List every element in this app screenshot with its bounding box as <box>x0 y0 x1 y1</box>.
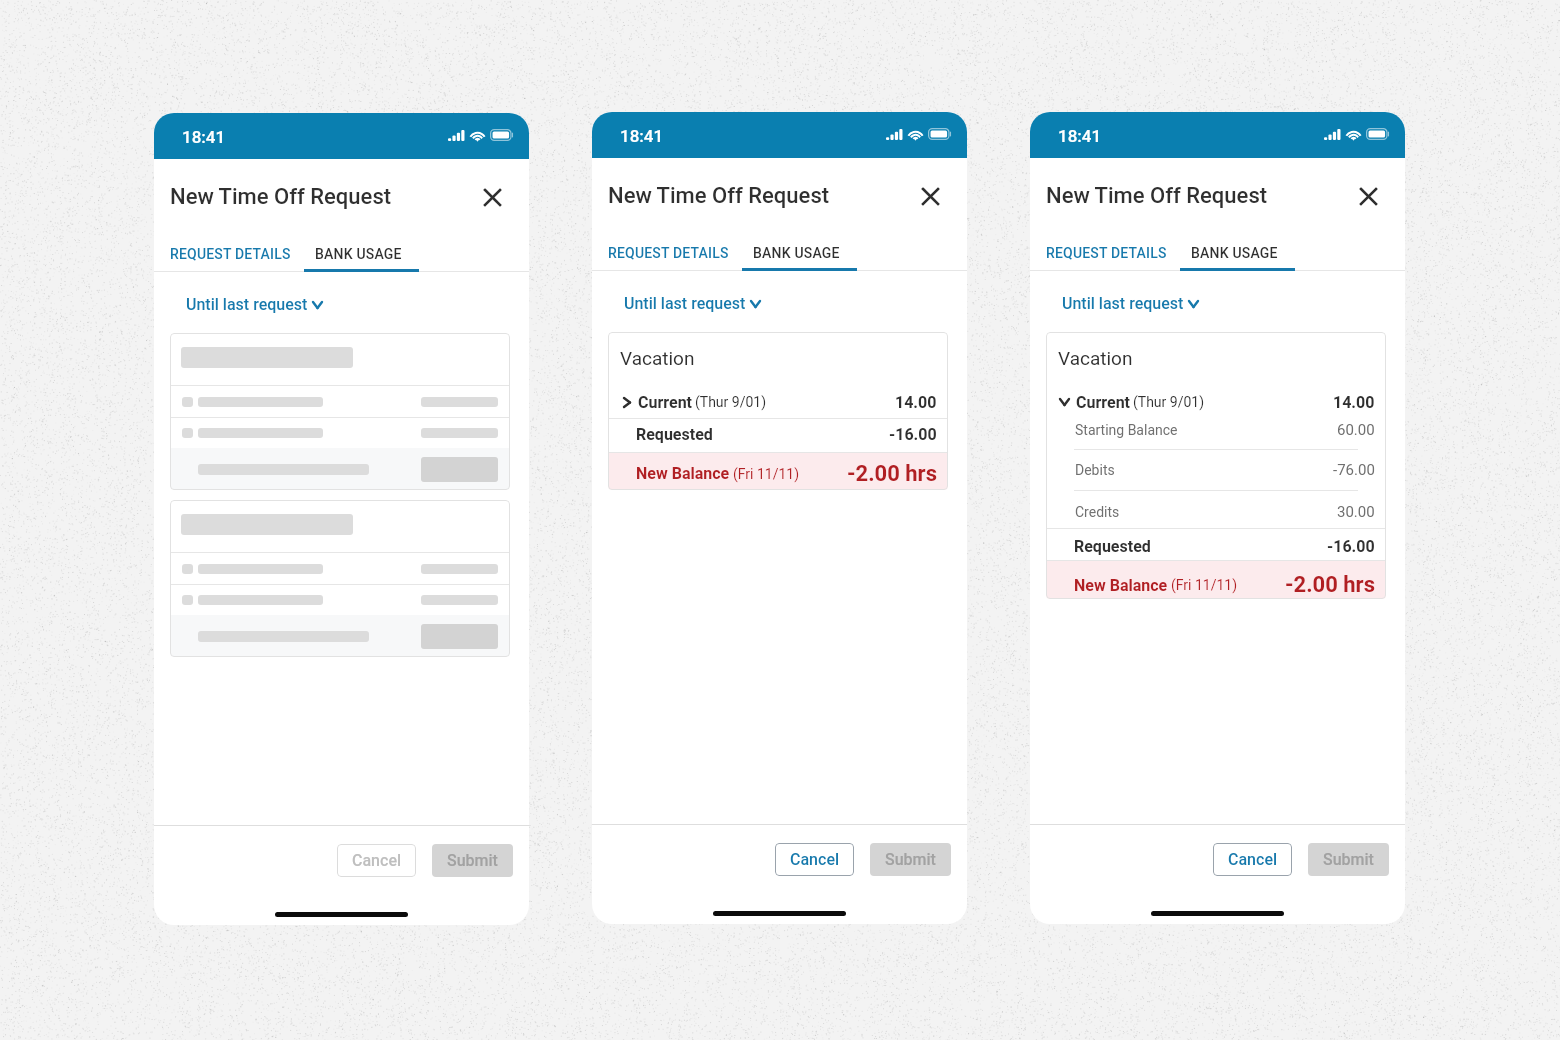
staticText: Vacation <box>620 347 695 369</box>
button[interactable]: Current <box>608 384 948 418</box>
staticText: -2.00 hrs <box>847 461 937 487</box>
staticText: REQUEST DETAILS <box>608 245 729 261</box>
staticText: Vacation <box>1058 347 1133 369</box>
button[interactable]: Cancel <box>775 843 854 876</box>
staticText: 18:41 <box>620 126 664 146</box>
staticText: 30.00 <box>1337 503 1375 521</box>
staticText: Submit <box>1323 850 1374 869</box>
staticText: New Time Off Request <box>1046 183 1268 209</box>
staticText: (Thur 9/01) <box>1133 394 1205 410</box>
staticText: Requested <box>636 425 713 444</box>
staticText: 60.00 <box>1337 421 1375 439</box>
staticText: Cancel <box>352 851 402 870</box>
staticText: 14.00 <box>1333 393 1375 412</box>
staticText: Current <box>1076 393 1130 412</box>
button[interactable]: Cancel <box>337 844 416 877</box>
staticText: Starting Balance <box>1075 422 1178 438</box>
staticText: (Fri 11/11) <box>733 466 800 482</box>
staticText: Until last request <box>1062 294 1184 313</box>
button[interactable]: Current <box>1046 384 1386 420</box>
staticText: 14.00 <box>895 393 937 412</box>
staticText: REQUEST DETAILS <box>170 246 291 262</box>
staticText: Submit <box>885 850 936 869</box>
staticText: -16.00 <box>1327 537 1375 556</box>
staticText: Cancel <box>1228 850 1278 869</box>
staticText: BANK USAGE <box>315 246 402 262</box>
staticText: Debits <box>1075 462 1115 478</box>
staticText: -2.00 hrs <box>1285 572 1375 598</box>
staticText: Submit <box>447 851 498 870</box>
staticText: Until last request <box>624 294 746 313</box>
button[interactable]: Close <box>471 176 513 218</box>
button[interactable]: Close <box>1347 175 1389 217</box>
staticText: (Thur 9/01) <box>695 394 767 410</box>
button[interactable]: REQUEST DETAILS <box>154 235 299 272</box>
staticText: BANK USAGE <box>753 245 840 261</box>
button[interactable]: Submit <box>870 843 951 876</box>
staticText: 18:41 <box>1058 126 1102 146</box>
button[interactable]: Until last request <box>624 294 764 313</box>
button[interactable]: Until last request <box>186 295 326 314</box>
staticText: 18:41 <box>182 127 226 147</box>
button[interactable]: BANK USAGE <box>737 234 856 271</box>
staticText: BANK USAGE <box>1191 245 1278 261</box>
button[interactable]: REQUEST DETAILS <box>592 234 737 271</box>
button[interactable]: Close <box>909 175 951 217</box>
staticText: Current <box>638 393 692 412</box>
staticText: -76.00 <box>1333 461 1375 479</box>
staticText: Credits <box>1075 504 1120 520</box>
staticText: Cancel <box>790 850 840 869</box>
staticText: -16.00 <box>889 425 937 444</box>
staticText: (Fri 11/11) <box>1171 577 1238 593</box>
button[interactable]: BANK USAGE <box>299 235 418 272</box>
staticText: REQUEST DETAILS <box>1046 245 1167 261</box>
button[interactable]: Submit <box>432 844 513 877</box>
staticText: New Balance <box>636 464 730 483</box>
staticText: Requested <box>1074 537 1151 556</box>
button[interactable]: REQUEST DETAILS <box>1030 234 1175 271</box>
button[interactable]: Submit <box>1308 843 1389 876</box>
staticText: New Time Off Request <box>608 183 830 209</box>
staticText: New Time Off Request <box>170 184 392 210</box>
staticText: New Balance <box>1074 576 1168 595</box>
button[interactable]: Until last request <box>1062 294 1202 313</box>
staticText: Until last request <box>186 295 308 314</box>
button[interactable]: BANK USAGE <box>1175 234 1294 271</box>
button[interactable]: Cancel <box>1213 843 1292 876</box>
